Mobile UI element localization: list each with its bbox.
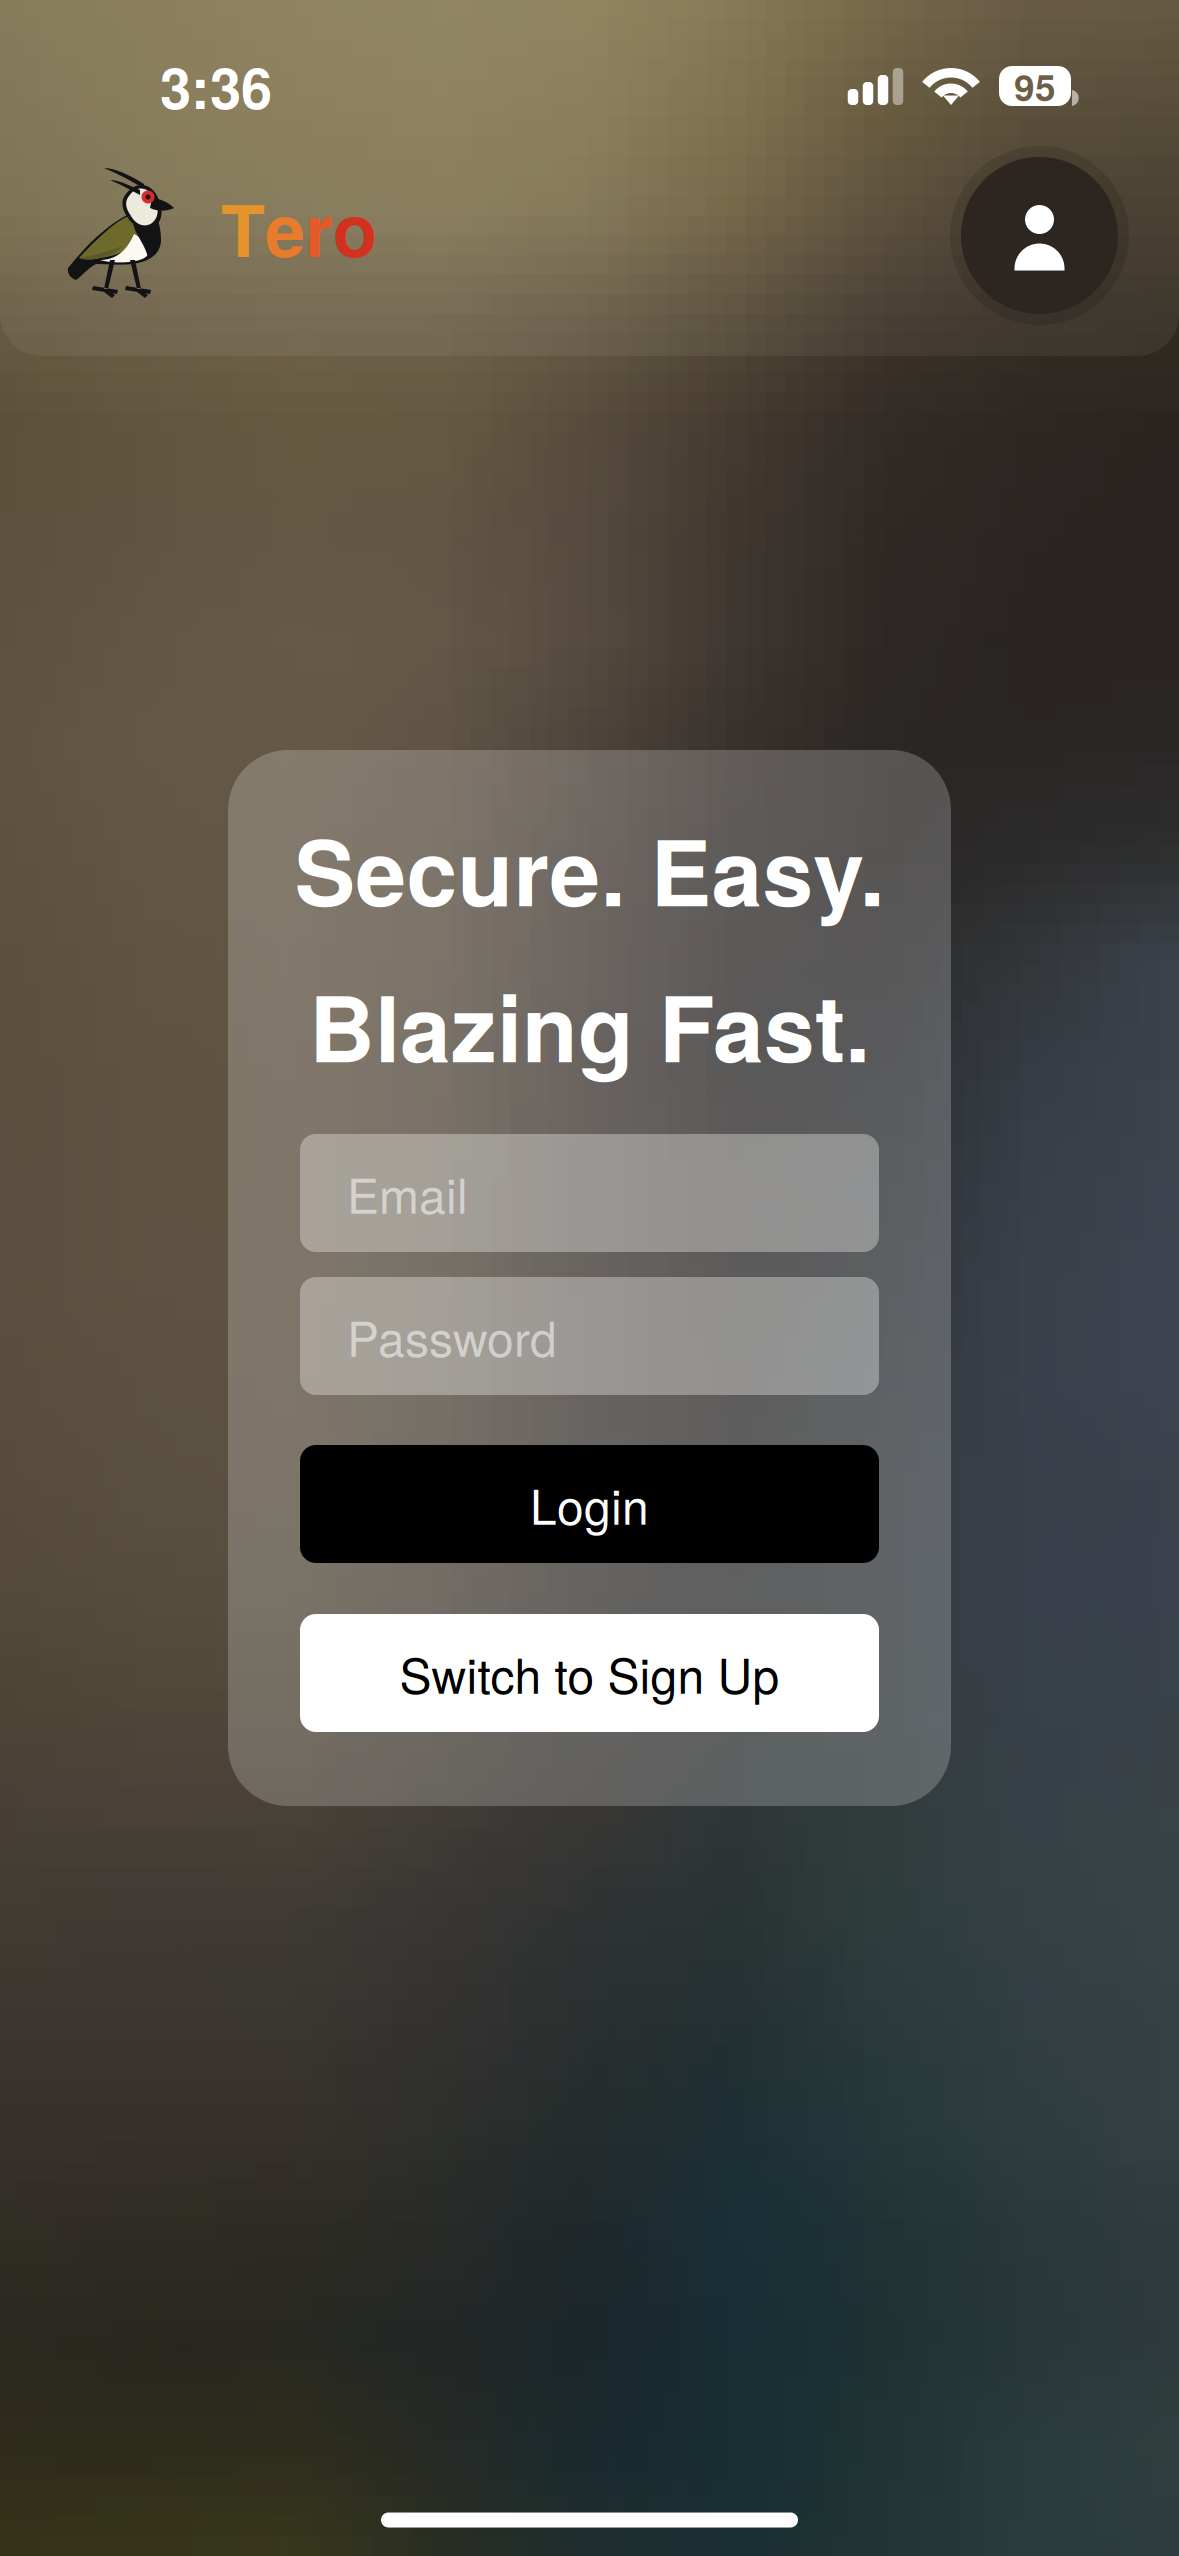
button[interactable]: Switch to Sign Up (300, 1614, 879, 1732)
staticText: r (305, 176, 333, 279)
staticText: Secure. Easy. (294, 804, 884, 934)
staticText: Switch to Sign Up (399, 1639, 779, 1707)
staticText: Email (347, 1159, 468, 1227)
staticText: e (265, 176, 305, 279)
staticText: Blazing Fast. (309, 960, 870, 1090)
staticText: 95 (1014, 59, 1056, 112)
staticText: Login (530, 1470, 649, 1538)
button[interactable]: Account (950, 146, 1129, 325)
button[interactable]: Login (300, 1445, 879, 1563)
staticText: T (221, 176, 265, 279)
staticText: Password (347, 1302, 557, 1370)
staticText: o (333, 176, 377, 279)
staticText: 3:36 (160, 46, 272, 126)
